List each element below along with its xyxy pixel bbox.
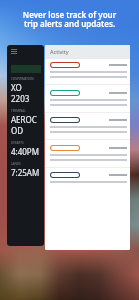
- staticText: 4:40PM: [11, 146, 39, 157]
- staticText: XO 2203: [11, 82, 41, 104]
- button[interactable]: [45, 145, 130, 172]
- button[interactable]: [45, 62, 130, 89]
- button[interactable]: [45, 117, 130, 144]
- button[interactable]: [45, 172, 130, 199]
- staticText: AEROCOD: [11, 114, 41, 136]
- staticText: Never lose track of your trip alerts and…: [6, 9, 133, 30]
- button[interactable]: [45, 90, 130, 117]
- staticText: TERMINAL: [11, 109, 26, 113]
- button[interactable]: CONFIRMATION: [7, 45, 44, 246]
- staticText: LANDS: [11, 162, 21, 166]
- staticText: DEPARTS: [11, 141, 24, 145]
- staticText: Activity: [50, 48, 69, 55]
- staticText: CONFIRMATION: [11, 77, 34, 81]
- staticText: 7:25AM: [11, 167, 40, 178]
